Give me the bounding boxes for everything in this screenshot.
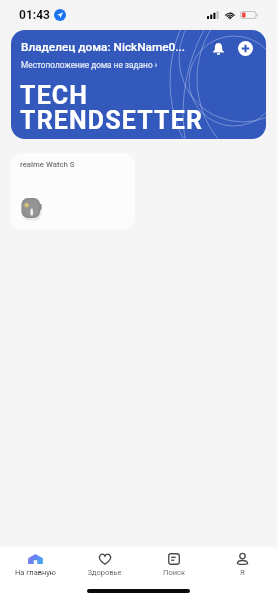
- staticText: Здоровье: [87, 568, 122, 577]
- button[interactable]: Поиск: [139, 549, 208, 584]
- button[interactable]: Add device: [234, 37, 256, 59]
- staticText: Местоположение дома не задано ›: [21, 60, 158, 70]
- button[interactable]: Здоровье: [70, 549, 139, 584]
- staticText: На главную: [15, 568, 56, 577]
- button[interactable]: realme Watch S: [11, 153, 135, 230]
- staticText: Я: [240, 568, 245, 577]
- button[interactable]: Я: [208, 549, 277, 584]
- button[interactable]: На главную: [0, 549, 70, 584]
- staticText: realme Watch S: [20, 160, 75, 169]
- staticText: TECH TRENDSETTER: [20, 81, 204, 135]
- button[interactable]: Notifications: [207, 37, 229, 59]
- staticText: 01:43: [19, 8, 50, 22]
- staticText: Владелец дома: NickName0...: [21, 40, 186, 54]
- staticText: Поиск: [163, 568, 185, 577]
